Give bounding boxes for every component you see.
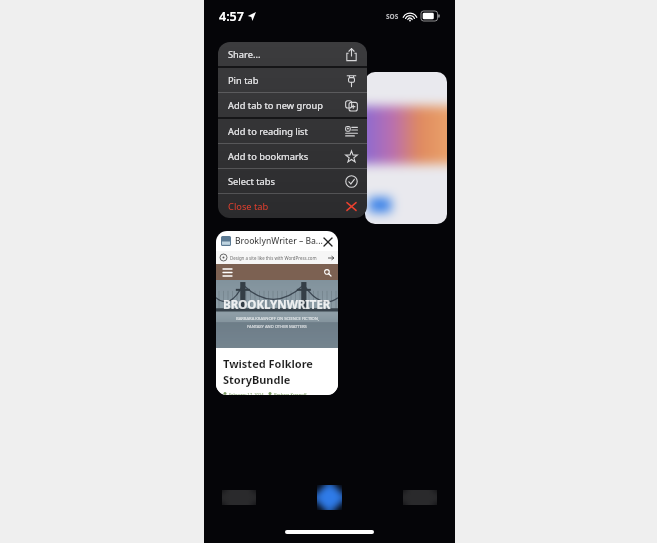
button[interactable]: New tab bbox=[317, 485, 342, 510]
button[interactable]: BrooklynWriter – Ba... bbox=[216, 231, 338, 395]
button[interactable]: Tab groups bbox=[222, 490, 256, 505]
staticText: Close tab bbox=[228, 200, 269, 213]
button[interactable]: Add to bookmarks bbox=[218, 144, 367, 168]
staticText: BROOKLYNWRITER bbox=[223, 297, 331, 313]
button[interactable]: Select tabs bbox=[218, 169, 367, 193]
button[interactable]: Add to reading list bbox=[218, 119, 367, 143]
staticText: FANTASY AND OTHER MATTERS bbox=[247, 324, 307, 330]
staticText: StoryBundle bbox=[223, 372, 291, 387]
button[interactable]: Share... bbox=[218, 42, 367, 66]
staticText: SOS bbox=[386, 12, 399, 21]
staticText: 4:57 bbox=[219, 8, 244, 25]
button[interactable]: Close tab bbox=[218, 194, 367, 218]
staticText: Add to bookmarks bbox=[228, 150, 309, 163]
staticText: Add to reading list bbox=[228, 125, 308, 138]
staticText: Pin tab bbox=[228, 74, 259, 87]
staticText: February 17, 2024 bbox=[229, 392, 264, 395]
staticText: Barbara Krasnoff bbox=[274, 392, 307, 395]
staticText: Design a site like this with WordPress.c… bbox=[230, 255, 317, 261]
button[interactable]: Add tab to new group bbox=[218, 93, 367, 117]
button[interactable]: Close tab bbox=[323, 235, 333, 248]
staticText: BARBARA KRASNOFF ON SCIENCE FICTION, bbox=[236, 316, 319, 322]
staticText: Add tab to new group bbox=[228, 99, 323, 112]
staticText: Share... bbox=[228, 48, 261, 61]
button[interactable]: Done bbox=[403, 490, 437, 505]
staticText: Twisted Folklore bbox=[223, 356, 313, 371]
button[interactable]: Pin tab bbox=[218, 68, 367, 92]
staticText: Select tabs bbox=[228, 175, 275, 188]
staticText: BrooklynWriter – Ba... bbox=[235, 235, 323, 247]
